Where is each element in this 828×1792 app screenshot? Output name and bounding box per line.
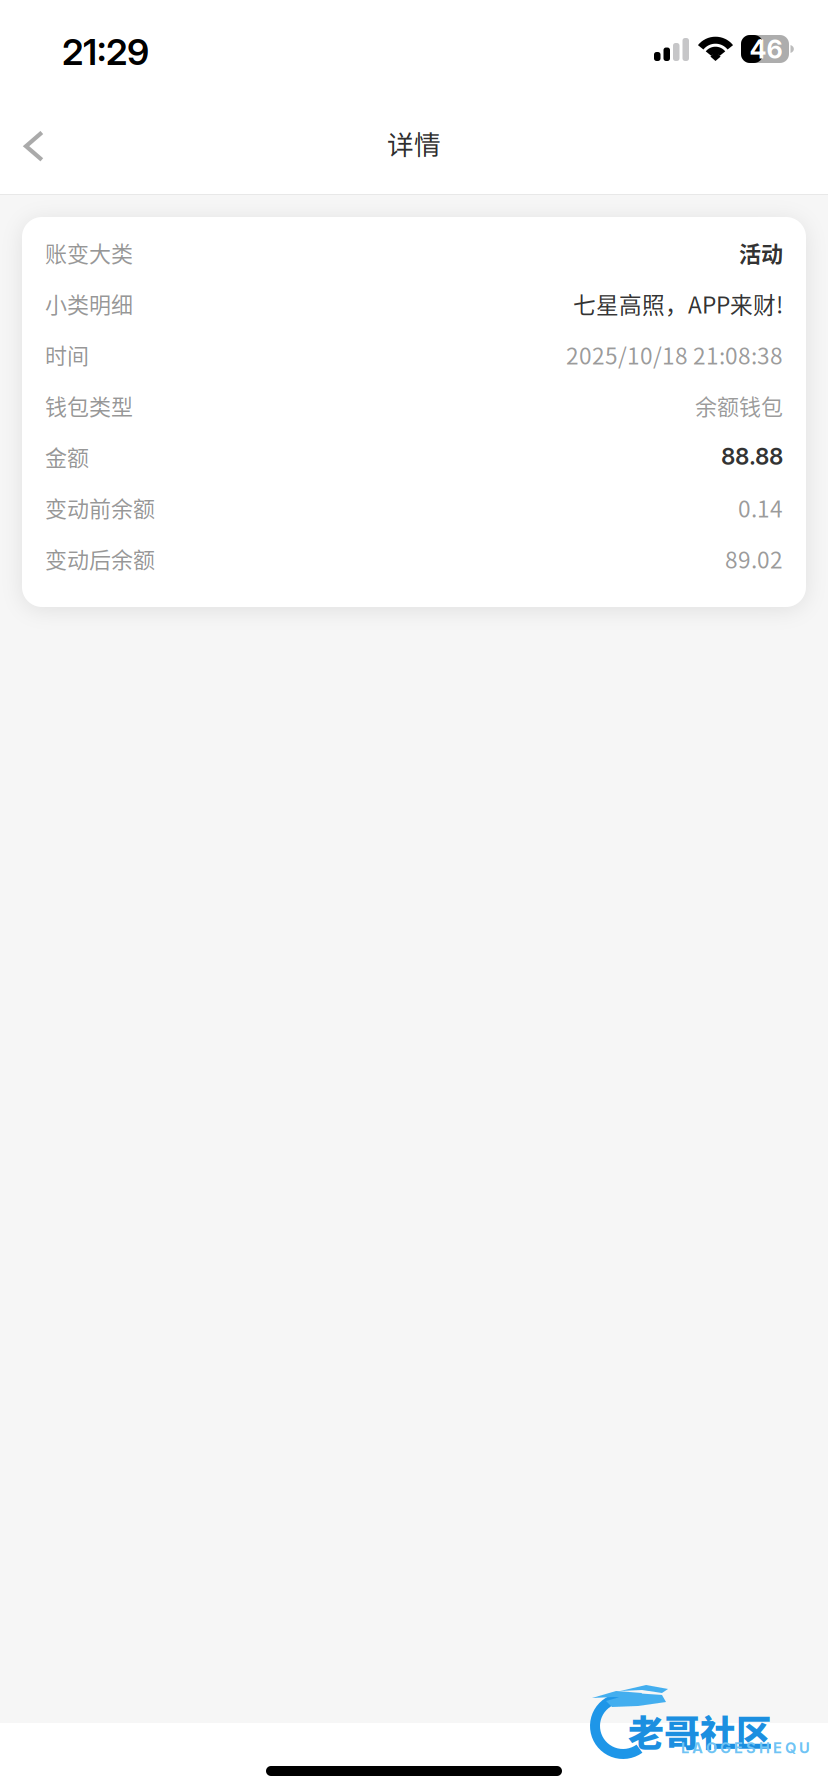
staticText: 小类明细 xyxy=(45,288,133,319)
staticText: 变动后余额 xyxy=(45,543,155,574)
staticText: 七星高照，APP来财! xyxy=(573,287,783,320)
staticText: 46 xyxy=(749,34,782,65)
staticText: 2025/10/18 21:08:38 xyxy=(566,338,783,371)
staticText: 老哥社区 xyxy=(628,1705,772,1757)
staticText: 详情 xyxy=(387,124,441,162)
staticText: 88.88 xyxy=(721,443,783,470)
staticText: 21:29 xyxy=(62,30,149,74)
staticText: 余额钱包 xyxy=(695,390,783,421)
staticText: 时间 xyxy=(45,339,89,370)
staticText: L A O G E S H E Q U xyxy=(681,1739,810,1757)
staticText: 钱包类型 xyxy=(45,390,133,421)
button[interactable]: Back xyxy=(0,98,74,187)
staticText: 0.14 xyxy=(738,491,783,524)
staticText: 金额 xyxy=(45,441,89,472)
staticText: 变动前余额 xyxy=(45,492,155,523)
staticText: 账变大类 xyxy=(45,237,133,268)
staticText: 活动 xyxy=(739,237,783,268)
staticText: 89.02 xyxy=(725,542,783,575)
